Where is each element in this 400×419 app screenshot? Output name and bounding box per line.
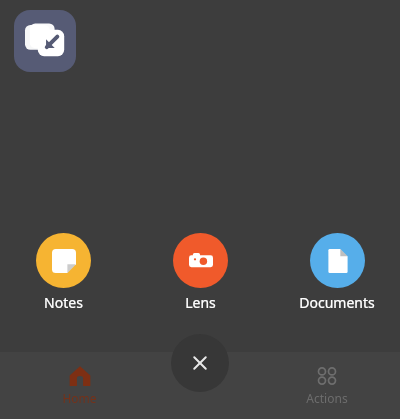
button[interactable]: Home	[52, 361, 107, 410]
button[interactable]: Actions	[296, 362, 358, 410]
staticText: Home	[62, 390, 97, 406]
button[interactable]: Lens	[154, 233, 246, 312]
staticText: Documents	[299, 293, 375, 312]
staticText: Notes	[44, 293, 83, 312]
button[interactable]: Close	[171, 334, 229, 392]
staticText: Actions	[306, 390, 348, 406]
button[interactable]: Documents	[291, 233, 383, 312]
button[interactable]: Notes	[17, 233, 109, 312]
staticText: Lens	[185, 293, 216, 312]
button[interactable]: App shortcuts	[14, 10, 76, 72]
